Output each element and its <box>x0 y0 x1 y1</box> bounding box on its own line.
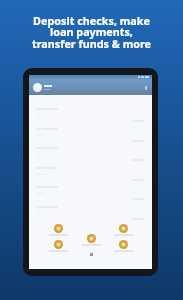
button[interactable] <box>29 147 152 161</box>
button[interactable]: Notifications <box>145 86 147 90</box>
button[interactable] <box>29 108 152 122</box>
button[interactable] <box>29 167 152 181</box>
button[interactable] <box>29 206 152 220</box>
button[interactable] <box>29 186 152 200</box>
button[interactable] <box>112 224 134 236</box>
staticText: Deposit checks, make loan payments, tran… <box>0 13 183 51</box>
button[interactable] <box>29 128 152 142</box>
button[interactable] <box>47 240 69 252</box>
button[interactable] <box>47 224 69 236</box>
button[interactable] <box>80 234 102 246</box>
button[interactable] <box>112 240 134 252</box>
